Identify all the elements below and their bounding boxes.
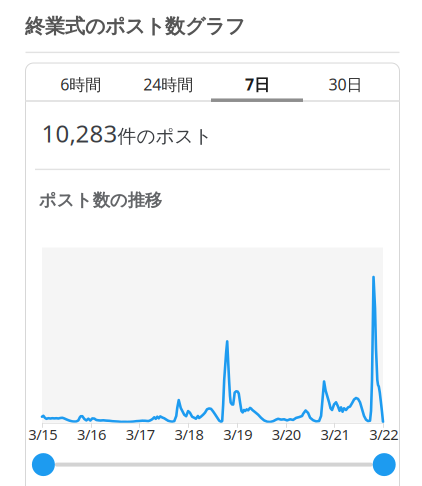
staticText: 3/15	[28, 424, 57, 444]
staticText: 3/19	[223, 424, 252, 444]
button[interactable]: 24時間	[124, 65, 212, 103]
staticText: 30日	[328, 74, 362, 95]
staticText: 3/18	[174, 424, 203, 444]
staticText: 3/21	[321, 424, 350, 444]
button[interactable]: 30日	[301, 65, 389, 103]
staticText: 終業式のポスト数グラフ	[25, 14, 245, 39]
staticText: 3/22	[369, 424, 398, 444]
button[interactable]: 7日	[214, 65, 302, 103]
staticText: 6時間	[60, 74, 101, 95]
button[interactable]: 6時間	[37, 65, 125, 103]
staticText: ポスト数の推移	[39, 190, 162, 211]
staticText: 7日	[245, 74, 270, 95]
staticText: 24時間	[143, 74, 193, 95]
button[interactable]: Range start	[32, 453, 55, 476]
staticText: 10,283	[41, 117, 117, 149]
button[interactable]: Range end	[373, 453, 396, 476]
staticText: 3/17	[126, 424, 155, 444]
staticText: 3/16	[77, 424, 106, 444]
staticText: 件のポスト	[117, 125, 212, 148]
staticText: 3/20	[272, 424, 301, 444]
